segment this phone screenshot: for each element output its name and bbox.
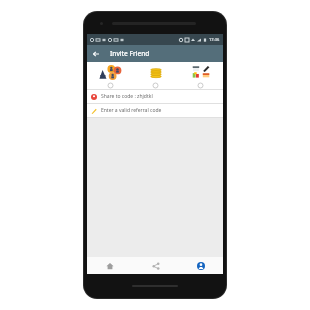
button[interactable]: Back xyxy=(87,45,104,62)
button[interactable]: Share xyxy=(133,257,178,274)
staticText: Enter a valid referral code xyxy=(101,107,162,114)
button[interactable]: Share to code : zhjdtkl xyxy=(87,89,223,104)
staticText: 17:36 xyxy=(209,37,220,42)
button[interactable]: Invite xyxy=(87,62,133,82)
button[interactable]: Enter a valid referral code xyxy=(87,104,223,118)
button[interactable]: Rewards xyxy=(178,62,223,82)
button[interactable]: Coins xyxy=(133,62,178,82)
button[interactable]: Home xyxy=(87,257,133,274)
staticText: Share to code : zhjdtkl xyxy=(101,93,153,100)
staticText: Invite Friend xyxy=(110,49,150,58)
button[interactable]: Profile xyxy=(178,257,223,274)
